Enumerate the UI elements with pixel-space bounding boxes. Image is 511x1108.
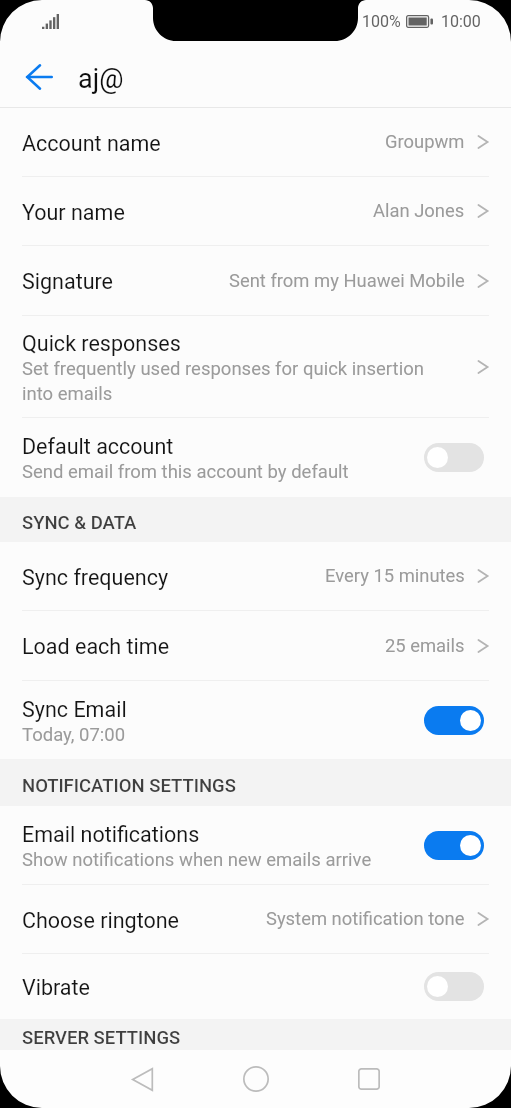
staticText: 10:00 [441,12,481,31]
button[interactable]: Load each time [0,611,511,680]
staticText: Quick responses [22,331,181,356]
button[interactable]: Your name [0,177,511,245]
staticText: Set frequently used responses for quick … [22,358,434,404]
staticText: 25 emails [385,635,465,657]
button[interactable]: Choose ringtone [0,885,511,953]
staticText: 100% [362,12,401,31]
button[interactable]: Signature [0,246,511,315]
staticText: Show notifications when new emails arriv… [22,849,372,871]
staticText: aj@ [78,63,124,95]
staticText: System notification tone [266,908,465,930]
staticText: Sync Email [22,697,127,722]
staticText: Email notifications [22,822,200,847]
staticText: Groupwm [385,131,465,153]
staticText: Vibrate [22,975,90,1000]
button[interactable] [424,831,484,860]
staticText: Alan Jones [373,200,465,222]
staticText: Choose ringtone [22,908,180,933]
button[interactable]: Sync frequency [0,542,511,610]
button[interactable]: Default account [0,418,511,497]
button[interactable]: Back [16,54,62,100]
staticText: Signature [22,269,114,294]
button[interactable] [424,706,484,735]
button[interactable] [424,972,484,1001]
button[interactable]: Back [107,1054,177,1104]
button[interactable]: Recent apps [334,1054,404,1104]
staticText: Account name [22,131,161,156]
button[interactable]: Account name [0,108,511,176]
staticText: Load each time [22,634,170,659]
button[interactable]: Home [221,1054,291,1104]
button[interactable]: Sync Email [0,681,511,759]
staticText: Every 15 minutes [325,565,465,587]
button[interactable] [424,443,484,472]
button[interactable]: Quick responses [0,316,511,417]
staticText: Your name [22,200,125,225]
staticText: NOTIFICATION SETTINGS [22,775,236,797]
staticText: Sync frequency [22,565,169,590]
staticText: SYNC & DATA [22,512,137,534]
staticText: Sent from my Huawei Mobile [229,270,465,292]
staticText: Send email from this account by default [22,461,349,483]
button[interactable]: Vibrate [0,954,511,1019]
staticText: Default account [22,434,174,459]
button[interactable]: Email notifications [0,806,511,884]
staticText: SERVER SETTINGS [22,1027,181,1049]
staticText: Today, 07:00 [22,724,126,746]
